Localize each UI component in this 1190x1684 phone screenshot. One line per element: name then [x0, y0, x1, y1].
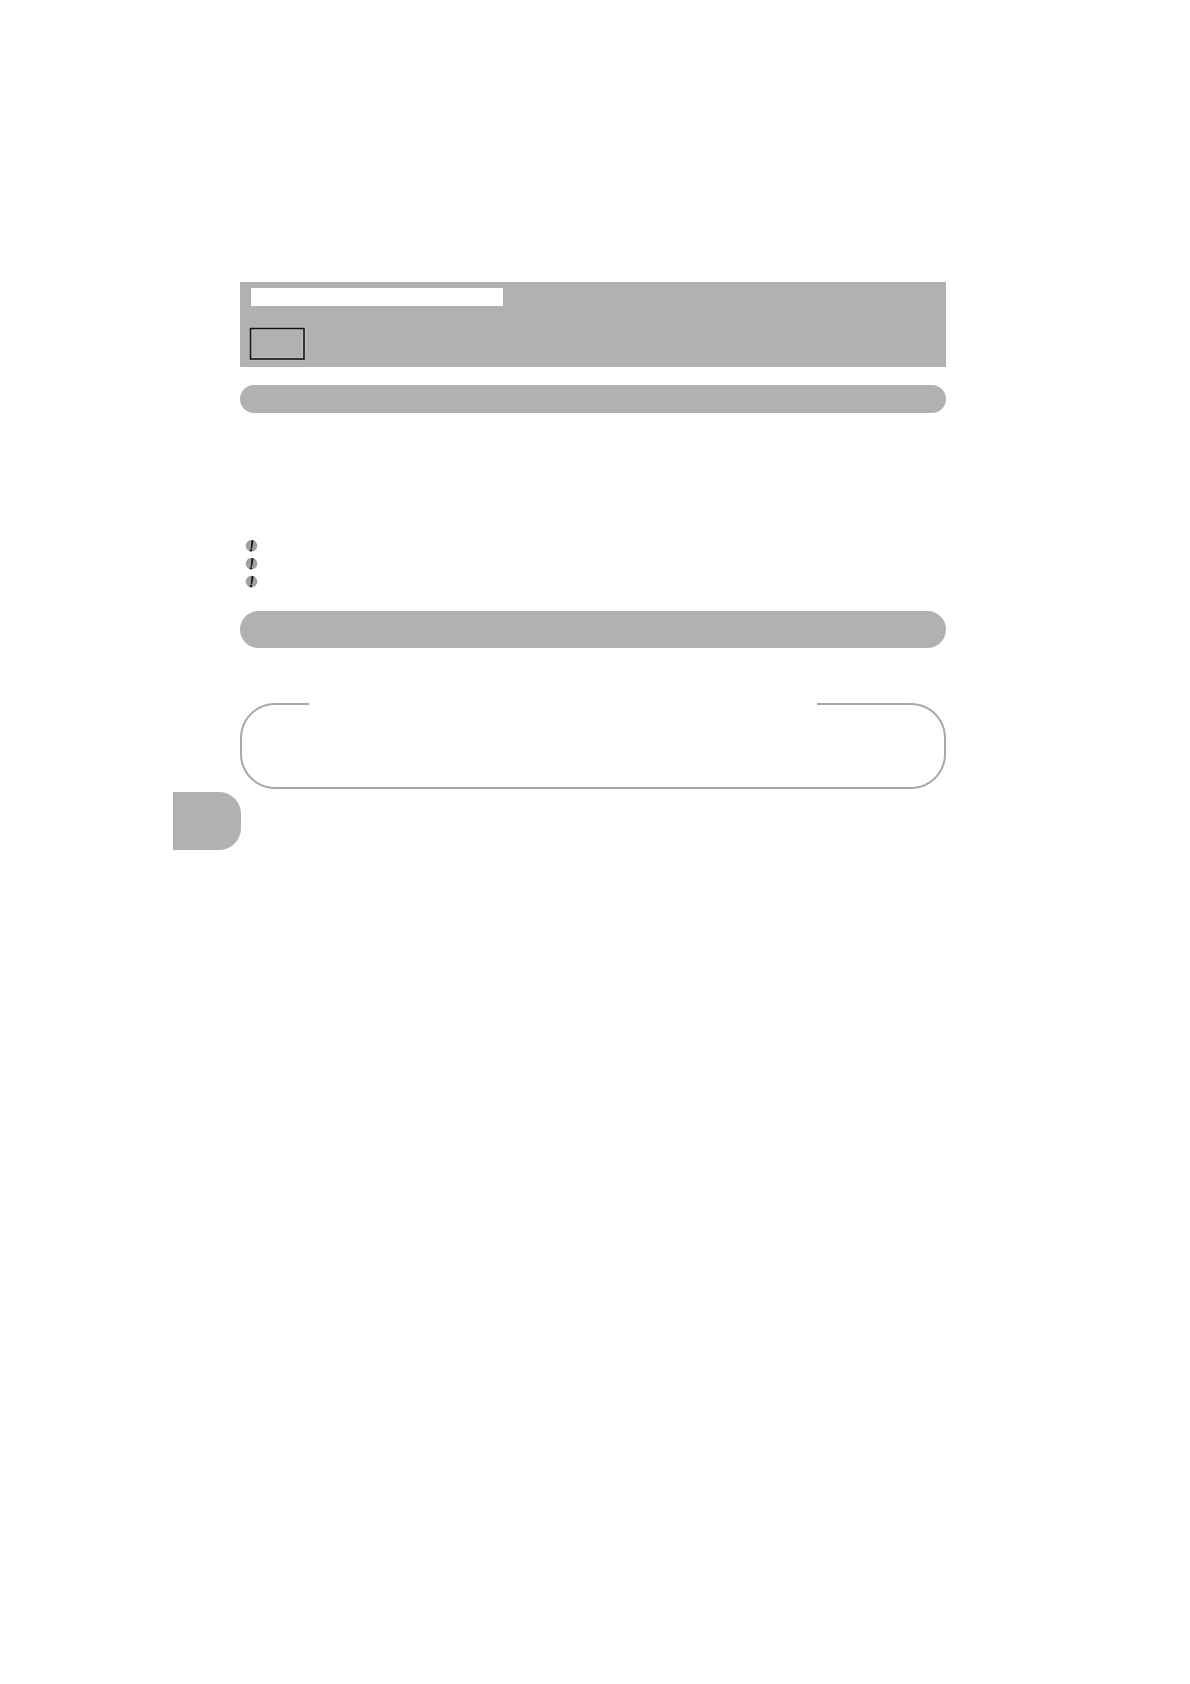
button[interactable]: Secondary action	[240, 611, 946, 648]
button[interactable]: Tab	[173, 792, 241, 850]
button[interactable]: Submit	[250, 328, 304, 359]
button[interactable]: Primary action	[240, 385, 946, 413]
